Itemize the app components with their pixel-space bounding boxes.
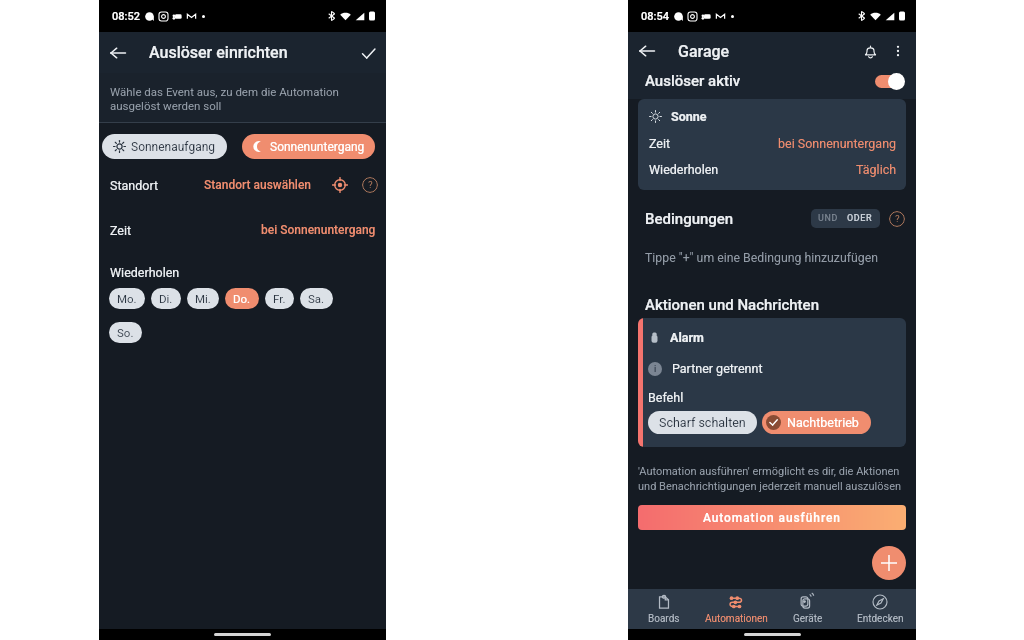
staticText: Scharf schalten [659, 415, 746, 430]
staticText: Sonne [671, 109, 707, 124]
staticText: Di. [159, 292, 173, 305]
staticText: 08:54 [641, 10, 669, 23]
staticText: Wiederholen [110, 265, 180, 280]
staticText: 'Automation ausführen' ermöglicht es dir… [638, 465, 906, 493]
staticText: Wiederholen [649, 162, 719, 177]
staticText: Geräte [793, 613, 823, 625]
staticText: Sonnenuntergang [270, 140, 365, 154]
button[interactable]: Sonne [638, 99, 906, 190]
button[interactable]: Zeit [99, 217, 386, 243]
staticText: ? [895, 213, 900, 225]
staticText: Do. [233, 292, 251, 305]
staticText: Wähle das Event aus, zu dem die Automati… [110, 85, 354, 113]
button[interactable]: Automationen [700, 589, 772, 629]
staticText: Partner getrennt [672, 361, 763, 376]
button[interactable]: Back [634, 38, 660, 64]
button[interactable]: Save [355, 40, 381, 66]
button[interactable]: Help [889, 211, 905, 227]
button[interactable]: Sonnenaufgang [102, 134, 227, 159]
staticText: Entdecken [857, 613, 904, 625]
staticText: Befehl [648, 390, 684, 405]
staticText: UND [818, 213, 838, 224]
staticText: Tippe "+" um eine Bedingung hinzuzufügen [645, 251, 879, 265]
button[interactable]: More options [885, 38, 911, 64]
button[interactable]: Sonnenuntergang [242, 134, 375, 159]
staticText: Standort auswählen [204, 178, 312, 192]
staticText: So. [117, 326, 134, 339]
button[interactable]: Mi. [187, 288, 219, 309]
staticText: Automation ausführen [703, 511, 841, 525]
staticText: Garage [678, 42, 730, 61]
staticText: Auslöser aktiv [645, 72, 741, 90]
button[interactable]: Back [105, 40, 131, 66]
staticText: Nachtbetrieb [787, 415, 859, 430]
staticText: Automationen [705, 613, 768, 625]
staticText: Täglich [856, 162, 897, 177]
staticText: Auslöser einrichten [149, 43, 288, 62]
button[interactable]: Entdecken [844, 589, 916, 629]
button[interactable]: Scharf schalten [648, 411, 757, 434]
staticText: bei Sonnenuntergang [778, 136, 897, 151]
staticText: Zeit [649, 136, 671, 151]
button[interactable]: Di. [151, 288, 181, 309]
button[interactable]: Nachtbetrieb [762, 411, 871, 434]
staticText: ODER [847, 213, 873, 224]
button[interactable]: UND [811, 209, 880, 228]
staticText: Bedingungen [645, 210, 734, 228]
staticText: Sa. [308, 292, 325, 305]
staticText: i [654, 364, 657, 374]
button[interactable]: Do. [225, 288, 259, 309]
button[interactable]: Help [362, 177, 378, 193]
staticText: 08:52 [112, 10, 140, 23]
staticText: bei Sonnenuntergang [261, 223, 376, 237]
staticText: Boards [648, 613, 680, 625]
button[interactable]: Sa. [300, 288, 333, 309]
staticText: Alarm [670, 330, 704, 345]
button[interactable]: Auslöser aktiv [628, 70, 916, 92]
staticText: Zeit [110, 223, 132, 238]
button[interactable]: Add automation [872, 546, 906, 580]
button[interactable]: Notifications [857, 38, 883, 64]
button[interactable]: Fr. [265, 288, 294, 309]
staticText: Standort [110, 178, 159, 193]
button[interactable]: Boards [628, 589, 700, 629]
button[interactable]: So. [109, 322, 142, 343]
staticText: Mo. [117, 292, 137, 305]
button[interactable]: Mo. [109, 288, 145, 309]
button[interactable]: Geräte [772, 589, 844, 629]
button[interactable]: Standort [99, 172, 386, 198]
staticText: Sonnenaufgang [131, 140, 216, 154]
staticText: Aktionen und Nachrichten [645, 296, 819, 314]
button[interactable]: My location [332, 177, 348, 193]
button[interactable]: Automation ausführen [638, 505, 906, 530]
staticText: ? [368, 179, 373, 191]
staticText: Fr. [273, 292, 286, 305]
staticText: Mi. [195, 292, 211, 305]
